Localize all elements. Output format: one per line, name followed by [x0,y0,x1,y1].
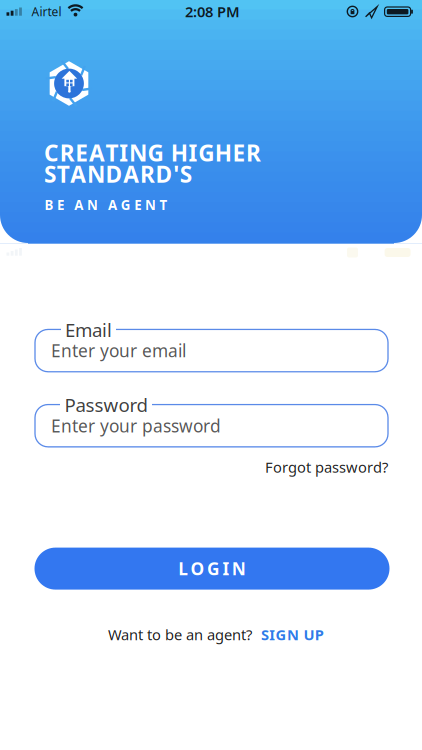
staticText: Password [64,392,147,417]
staticText: Airtel [31,3,61,19]
staticText: Want to be an agent? [108,625,252,644]
staticText: L [178,557,188,580]
staticText: ' [173,159,179,189]
staticText: U [303,625,314,644]
staticText: H [215,138,232,168]
staticText: B [44,196,53,214]
button[interactable]: Email [35,329,388,372]
staticText: I [188,138,197,168]
staticText: A [108,196,117,214]
staticText [164,138,170,168]
staticText: 2:08 PM [185,2,240,21]
staticText: N [145,196,156,214]
staticText: I [119,138,128,168]
staticText: Enter your password [51,414,221,437]
staticText: A [123,159,139,189]
staticText: A [70,159,86,189]
staticText: T [106,138,119,168]
staticText: S [44,159,56,189]
staticText: N [87,159,105,189]
staticText: A [89,138,105,168]
staticText: R [246,138,261,168]
staticText: N [87,196,98,214]
staticText: E [57,196,64,214]
staticText: S [180,159,192,189]
staticText: D [106,159,123,189]
staticText: G [121,196,131,214]
staticText: G [198,138,214,168]
staticText: G [207,557,220,580]
staticText: R [60,138,75,168]
staticText: D [156,159,173,189]
staticText: G [276,625,287,644]
staticText: H [171,138,188,168]
staticText: E [75,138,88,168]
staticText: Enter your email [51,339,186,362]
staticText: G [148,138,164,168]
staticText: A [74,196,83,214]
button[interactable]: Forgot password? [265,457,388,477]
button[interactable]: L [34,548,389,590]
staticText: T [57,159,70,189]
staticText: S [261,625,269,644]
staticText: P [315,625,324,644]
staticText: Email [65,317,112,342]
button[interactable]: S [261,625,391,644]
staticText: E [232,138,245,168]
staticText: I [269,625,275,644]
staticText: N [287,625,299,644]
staticText: T [159,196,167,214]
staticText: O [191,557,205,580]
button[interactable]: Password [35,405,388,447]
staticText: I [222,557,229,580]
staticText: N [232,557,246,580]
staticText: Forgot password? [265,457,388,477]
staticText: N [129,138,147,168]
staticText: E [134,196,141,214]
staticText: C [44,138,59,168]
staticText: R [140,159,155,189]
